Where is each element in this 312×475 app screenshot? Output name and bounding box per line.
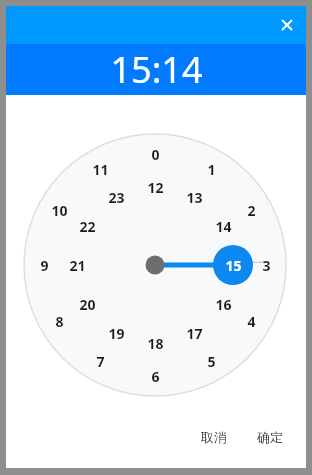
staticText: 11: [92, 160, 109, 179]
staticText: 8: [55, 312, 64, 331]
staticText: 7: [96, 352, 105, 371]
staticText: 15:14: [110, 45, 203, 94]
staticText: 13: [186, 188, 203, 207]
button[interactable]: Close: [272, 10, 302, 40]
staticText: 22: [79, 217, 96, 236]
staticText: 16: [215, 295, 232, 314]
staticText: 23: [108, 188, 125, 207]
staticText: 17: [186, 324, 203, 343]
staticText: 19: [108, 324, 125, 343]
button[interactable]: 确定: [245, 423, 295, 451]
staticText: 5: [207, 352, 216, 371]
staticText: 15: [225, 256, 242, 275]
staticText: 12: [147, 178, 164, 197]
staticText: 1: [207, 160, 216, 179]
button[interactable]: 15:14: [6, 44, 306, 95]
staticText: 6: [151, 367, 160, 386]
staticText: 18: [147, 334, 164, 353]
button[interactable]: 0: [23, 133, 287, 397]
staticText: 21: [69, 256, 86, 275]
staticText: 取消: [201, 429, 227, 445]
staticText: 10: [51, 201, 68, 220]
staticText: 2: [247, 201, 256, 220]
staticText: 9: [40, 256, 49, 275]
staticText: 14: [215, 217, 232, 236]
staticText: 4: [247, 312, 256, 331]
staticText: 3: [262, 256, 271, 275]
staticText: 确定: [257, 429, 283, 445]
staticText: 0: [151, 145, 160, 164]
staticText: 20: [79, 295, 96, 314]
button[interactable]: 取消: [189, 423, 239, 451]
